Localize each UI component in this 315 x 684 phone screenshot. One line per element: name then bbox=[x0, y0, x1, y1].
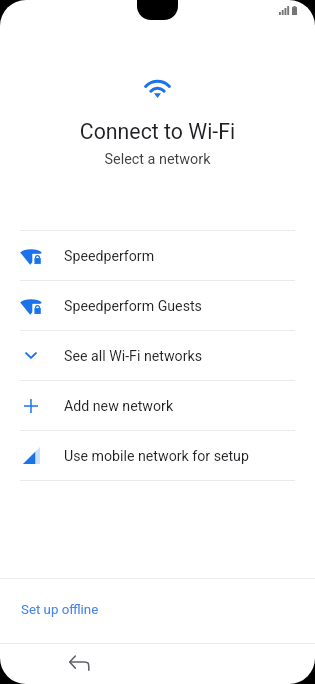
staticText: Connect to Wi-Fi bbox=[0, 119, 315, 144]
staticText: Use mobile network for setup bbox=[64, 448, 249, 465]
button[interactable]: Use mobile network for setup bbox=[20, 431, 295, 480]
button[interactable]: Speedperform bbox=[20, 231, 295, 280]
staticText: Select a network bbox=[0, 151, 315, 168]
staticText: Speedperform bbox=[64, 248, 155, 265]
staticText: See all Wi-Fi networks bbox=[64, 348, 202, 365]
button[interactable]: Back bbox=[61, 644, 98, 681]
staticText: Set up offline bbox=[21, 602, 99, 618]
button[interactable]: Set up offline bbox=[0, 577, 315, 643]
button[interactable]: See all Wi-Fi networks bbox=[20, 331, 295, 380]
button[interactable]: Speedperform Guests bbox=[20, 281, 295, 330]
button[interactable]: Add new network bbox=[20, 381, 295, 430]
staticText: Speedperform Guests bbox=[64, 298, 202, 315]
staticText: Add new network bbox=[64, 398, 174, 415]
